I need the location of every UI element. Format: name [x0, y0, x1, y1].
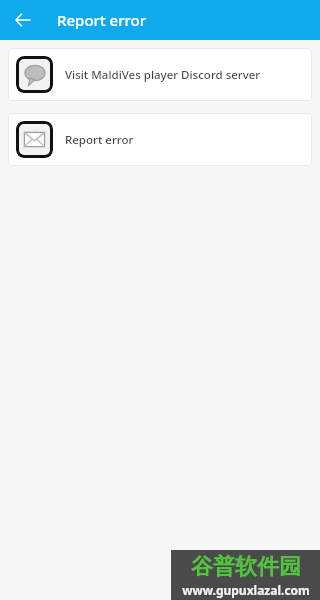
staticText: Visit MaldiVes player Discord server: [65, 67, 261, 83]
staticText: Report error: [65, 132, 134, 148]
staticText: www.gupuxlazal.com: [182, 582, 310, 598]
staticText: 谷普软件园: [191, 553, 301, 581]
staticText: Report error: [57, 10, 147, 30]
button[interactable]: Report error: [8, 113, 312, 166]
button[interactable]: Visit MaldiVes player Discord server: [8, 48, 312, 101]
button[interactable]: Back: [8, 5, 38, 35]
